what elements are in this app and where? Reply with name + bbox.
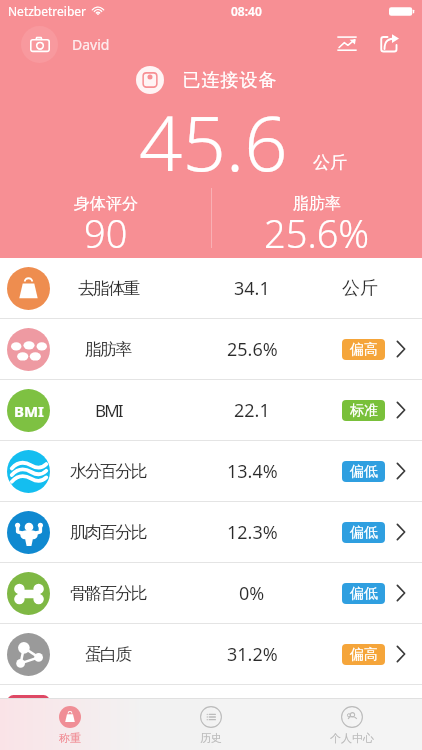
button[interactable]: 肌肉百分比	[0, 502, 422, 562]
staticText: 12.3%	[227, 520, 278, 545]
staticText: David	[72, 35, 110, 54]
staticText: 称重	[59, 731, 81, 745]
button[interactable]: 脂肪率	[0, 319, 422, 379]
button[interactable]: 去脂体重	[0, 258, 422, 318]
staticText: 偏高	[350, 341, 378, 359]
staticText: 公斤	[342, 277, 378, 300]
staticText: 脂肪率	[85, 339, 131, 360]
staticText: 标准	[350, 402, 378, 420]
staticText: 历史	[200, 731, 222, 745]
staticText: Netzbetreiber	[8, 3, 87, 19]
staticText: 25.6%	[227, 337, 278, 362]
button[interactable]: 历史	[140, 699, 281, 750]
staticText: 骨骼百分比	[70, 583, 146, 604]
button[interactable]: 骨骼百分比	[0, 563, 422, 623]
staticText: 08:40	[231, 3, 262, 19]
staticText: 偏高	[350, 646, 378, 664]
staticText: 13.4%	[227, 459, 278, 484]
staticText: 蛋白质	[85, 644, 131, 665]
staticText: 34.1	[234, 276, 270, 301]
staticText: 偏低	[350, 463, 378, 481]
staticText: 0%	[239, 581, 265, 606]
staticText: 偏低	[350, 524, 378, 542]
button[interactable]: 称重	[0, 699, 140, 750]
staticText: BMI	[95, 399, 122, 422]
button[interactable]: Share	[372, 27, 406, 61]
staticText: 脂肪率	[293, 194, 341, 214]
staticText: BMI	[14, 401, 44, 421]
staticText: 肌肉百分比	[70, 522, 146, 543]
staticText: 偏低	[350, 585, 378, 603]
button[interactable]: Profile photo	[21, 26, 58, 63]
staticText: 已连接设备	[182, 69, 277, 92]
staticText: 身体评分	[74, 194, 138, 214]
button[interactable]: 个人中心	[281, 699, 422, 750]
button[interactable]: BMI	[0, 380, 422, 440]
staticText: 个人中心	[330, 731, 374, 745]
staticText: 公斤	[313, 152, 347, 173]
button[interactable]: 水分百分比	[0, 441, 422, 501]
button[interactable]: 蛋白质	[0, 624, 422, 684]
staticText: 45.6	[139, 90, 288, 194]
staticText: 31.2%	[227, 642, 278, 667]
button[interactable]: Trend chart	[330, 27, 364, 61]
staticText: 90	[84, 207, 128, 259]
staticText: 去脂体重	[78, 278, 139, 299]
staticText: 水分百分比	[70, 461, 146, 482]
staticText: 25.6%	[264, 207, 370, 259]
staticText: 22.1	[234, 398, 270, 423]
